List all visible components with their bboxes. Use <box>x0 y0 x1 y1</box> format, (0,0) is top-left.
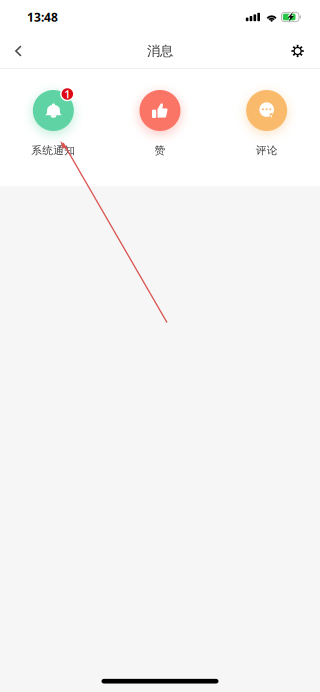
button[interactable]: 1 <box>0 87 107 157</box>
button[interactable]: 评论 <box>213 87 320 157</box>
staticText: 赞 <box>154 144 165 157</box>
staticText: 评论 <box>256 144 278 157</box>
staticText: 13:48 <box>27 9 58 25</box>
button[interactable]: Back <box>0 34 59 68</box>
button[interactable]: 赞 <box>107 87 213 157</box>
button[interactable]: Settings <box>260 34 320 68</box>
staticText: 消息 <box>147 43 173 59</box>
staticText: 系统通知 <box>31 144 75 157</box>
staticText: 1 <box>64 87 70 101</box>
